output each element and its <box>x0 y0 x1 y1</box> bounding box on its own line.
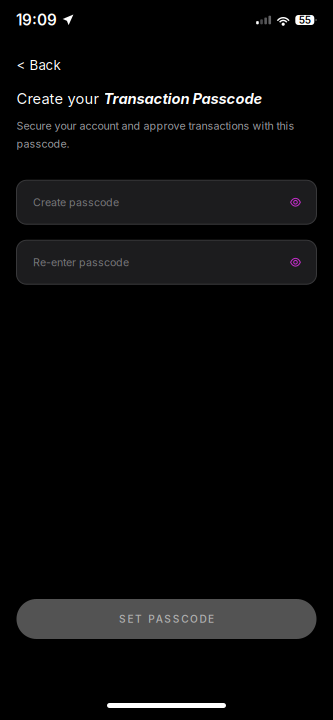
staticText: 55 <box>299 14 311 26</box>
staticText: Create your Transaction Passcode <box>16 90 262 107</box>
staticText: Secure your account and approve transact… <box>16 119 294 150</box>
staticText: Re-enter passcode <box>33 256 129 269</box>
staticText: 19:09 <box>16 11 57 29</box>
button[interactable]: SET PASSCODE <box>16 599 316 639</box>
button[interactable]: Create passcode <box>16 180 316 224</box>
button[interactable]: Re-enter passcode <box>16 240 316 284</box>
button[interactable]: < Back <box>0 52 70 78</box>
staticText: SET PASSCODE <box>119 613 214 625</box>
staticText: < Back <box>16 57 60 73</box>
button[interactable]: Show re-entered passcode <box>282 247 308 277</box>
button[interactable]: Show passcode <box>282 187 308 217</box>
staticText: Create passcode <box>33 196 119 209</box>
